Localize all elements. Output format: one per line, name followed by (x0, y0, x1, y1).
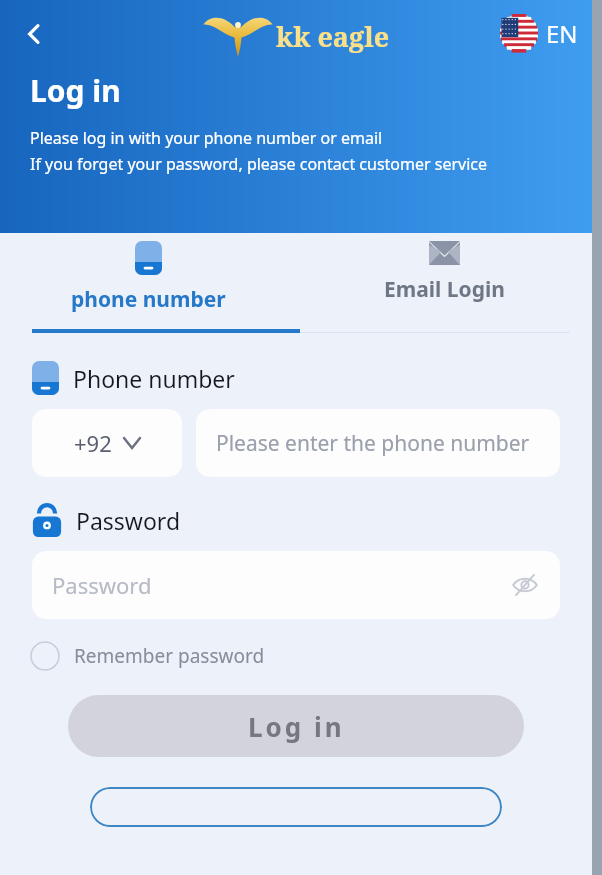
button[interactable]: +92 (32, 409, 182, 477)
button[interactable]: phone number (0, 233, 296, 333)
staticText: +92 (74, 428, 112, 458)
button[interactable]: Please enter the phone number (196, 409, 560, 477)
staticText: Phone number (73, 363, 235, 394)
staticText: Log in (248, 709, 345, 744)
button[interactable]: Email Login (296, 233, 592, 333)
staticText: Log in (30, 70, 121, 111)
button[interactable] (90, 787, 502, 827)
staticText: Email Login (384, 275, 505, 304)
staticText: Password (76, 505, 181, 536)
staticText: Password (52, 570, 152, 600)
staticText: phone number (71, 285, 226, 314)
button[interactable]: Log in (68, 695, 524, 757)
staticText: EN (546, 17, 578, 50)
button[interactable]: Show password (508, 568, 542, 602)
button[interactable]: Remember password (30, 641, 265, 671)
staticText: Please log in with your phone number or … (30, 127, 383, 149)
button[interactable]: Language EN (500, 14, 578, 52)
staticText: Please enter the phone number (216, 429, 530, 458)
staticText: If you forget your password, please cont… (30, 153, 488, 175)
staticText: Remember password (74, 643, 265, 669)
button[interactable]: Password (32, 551, 560, 619)
button[interactable]: Back (12, 12, 56, 56)
staticText: kk eagle (276, 18, 390, 55)
